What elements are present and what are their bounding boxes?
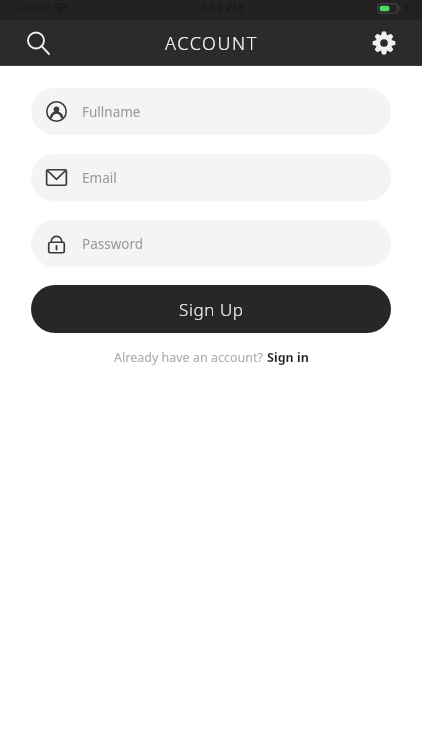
staticText: Sign in [267,349,309,366]
staticText: Fullname [82,103,141,121]
button[interactable]: Sign Up [31,285,391,333]
button[interactable]: Password [31,220,391,267]
staticText: Password [82,235,144,253]
staticText: Sign Up [179,298,244,321]
staticText: Already have an account? [114,349,267,366]
staticText: Email [82,169,117,187]
staticText: ACCOUNT [165,31,258,56]
button[interactable]: Settings [364,23,404,63]
button[interactable]: Sign in [267,349,309,366]
button[interactable]: Email [31,154,391,201]
button[interactable]: Fullname [31,88,391,135]
staticText: 3:55 PM [200,0,244,16]
button[interactable]: Search [18,23,58,63]
